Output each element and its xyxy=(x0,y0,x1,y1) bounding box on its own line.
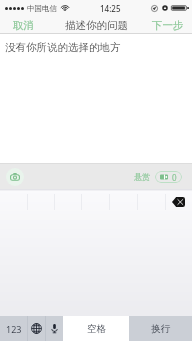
button[interactable]: 123 xyxy=(0,316,27,341)
staticText: 中国电信 xyxy=(27,4,57,13)
button[interactable]: Voice input xyxy=(46,316,63,341)
staticText: 没有你所说的选择的地方 xyxy=(5,41,121,54)
staticText: 描述你的问题 xyxy=(65,19,128,32)
staticText: 下一步 xyxy=(152,19,184,32)
staticText: 0 xyxy=(172,172,177,183)
staticText: 空格 xyxy=(87,323,106,335)
staticText: 14:25 xyxy=(100,3,121,14)
staticText: 123 xyxy=(6,323,22,335)
button[interactable]: 换行 xyxy=(129,316,192,341)
button[interactable]: Add photo xyxy=(6,168,24,186)
staticText: 悬赏 xyxy=(134,172,150,182)
staticText: 取消 xyxy=(13,19,34,32)
button[interactable]: Backspace xyxy=(172,197,185,207)
button[interactable]: 0 xyxy=(155,171,182,183)
button[interactable]: 下一步 xyxy=(144,16,192,34)
button[interactable]: Switch language xyxy=(28,316,45,341)
staticText: 换行 xyxy=(151,323,170,335)
button[interactable]: 取消 xyxy=(0,16,42,34)
button[interactable]: 空格 xyxy=(63,316,129,341)
button[interactable] xyxy=(166,191,192,210)
